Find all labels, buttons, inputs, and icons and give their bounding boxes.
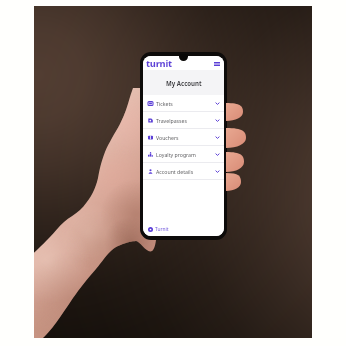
staticText: Turnit xyxy=(155,226,169,233)
button[interactable]: Account details xyxy=(143,163,224,180)
staticText: Tickets xyxy=(156,100,173,107)
button[interactable]: Vouchers xyxy=(143,129,224,146)
button[interactable]: Menu xyxy=(212,59,221,68)
button[interactable]: Loyalty program xyxy=(143,146,224,163)
button[interactable]: Tickets xyxy=(143,95,224,112)
staticText: Loyalty program xyxy=(156,151,196,158)
staticText: turnit xyxy=(146,57,172,70)
staticText: Account details xyxy=(156,168,194,175)
staticText: Vouchers xyxy=(156,134,179,141)
staticText: My Account xyxy=(166,79,202,87)
staticText: Travelpasses xyxy=(156,117,187,124)
button[interactable]: Travelpasses xyxy=(143,112,224,129)
